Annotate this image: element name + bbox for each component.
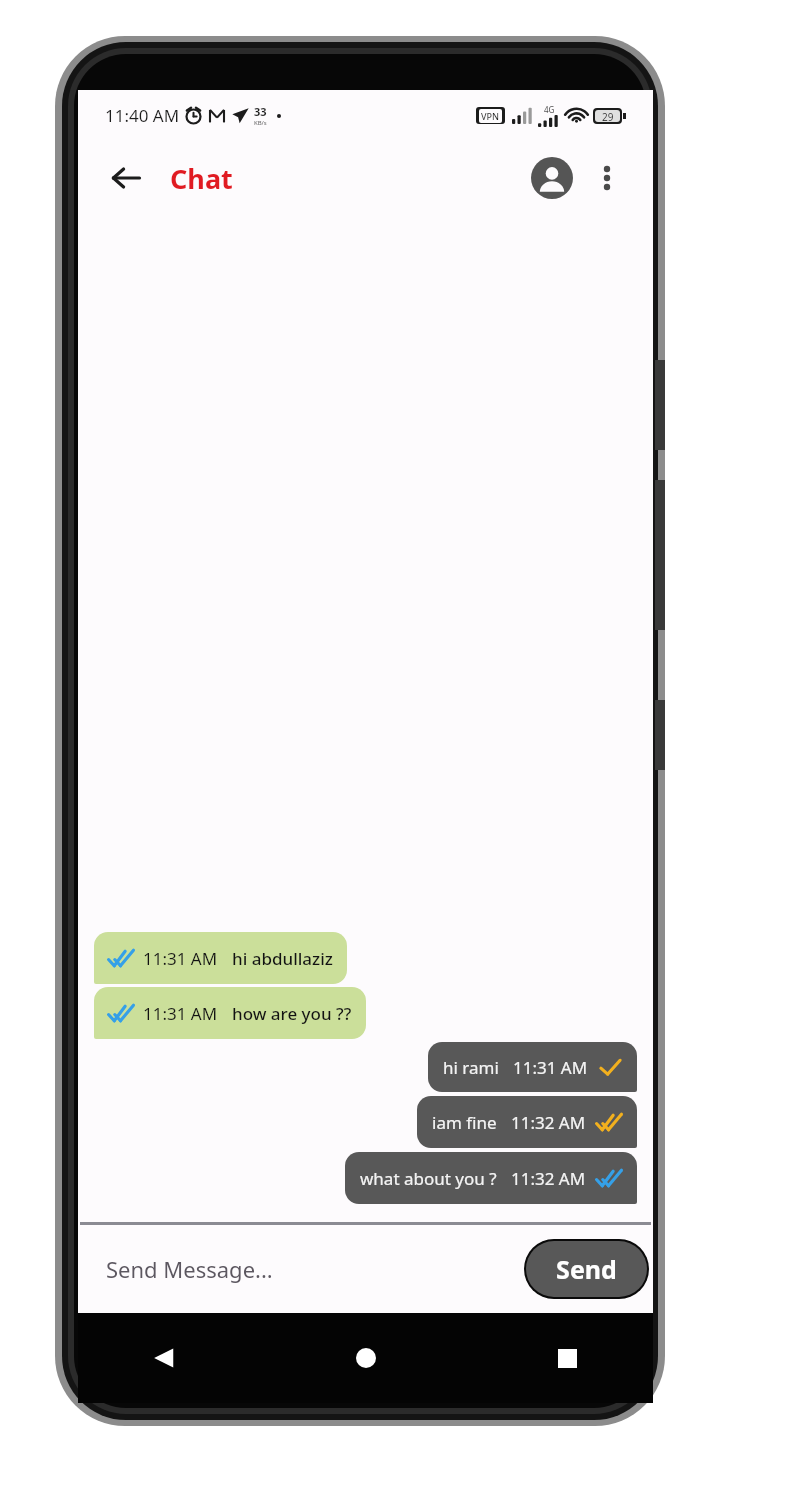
button[interactable]: Home — [340, 1332, 392, 1384]
button[interactable]: Profile — [529, 155, 575, 201]
button[interactable]: iam fine — [417, 1096, 637, 1148]
staticText: 4G — [544, 104, 555, 115]
staticText: 11:31 AM — [513, 1056, 588, 1079]
button[interactable]: Recent apps — [541, 1332, 593, 1384]
staticText: KB/s — [254, 119, 267, 127]
staticText: 11:31 AM — [143, 947, 218, 970]
button[interactable]: 11:31 AM — [94, 987, 366, 1039]
staticText: 29 — [602, 110, 614, 122]
button[interactable]: hi rami — [428, 1042, 637, 1092]
button[interactable]: Back — [138, 1332, 190, 1384]
staticText: 11:31 AM — [143, 1002, 218, 1025]
staticText: Send Message... — [106, 1254, 273, 1284]
staticText: hi rami — [443, 1056, 499, 1079]
staticText: VPN — [481, 110, 500, 122]
staticText: 11:32 AM — [511, 1111, 586, 1134]
button[interactable]: Back — [104, 156, 148, 200]
staticText: Send — [556, 1252, 617, 1286]
staticText: how are you ?? — [232, 1002, 352, 1025]
staticText: 11:40 AM — [105, 104, 180, 127]
button[interactable]: Send Message... — [106, 1254, 524, 1284]
button[interactable]: 11:31 AM — [94, 932, 347, 984]
staticText: hi abdullaziz — [232, 947, 333, 970]
staticText: what about you ? — [360, 1167, 497, 1190]
button[interactable]: More options — [587, 158, 627, 198]
button[interactable]: Send — [526, 1241, 647, 1297]
staticText: 11:32 AM — [511, 1167, 586, 1190]
staticText: iam fine — [432, 1111, 497, 1134]
staticText: Chat — [170, 160, 233, 197]
button[interactable]: what about you ? — [345, 1152, 637, 1204]
staticText: 33 — [254, 104, 267, 119]
